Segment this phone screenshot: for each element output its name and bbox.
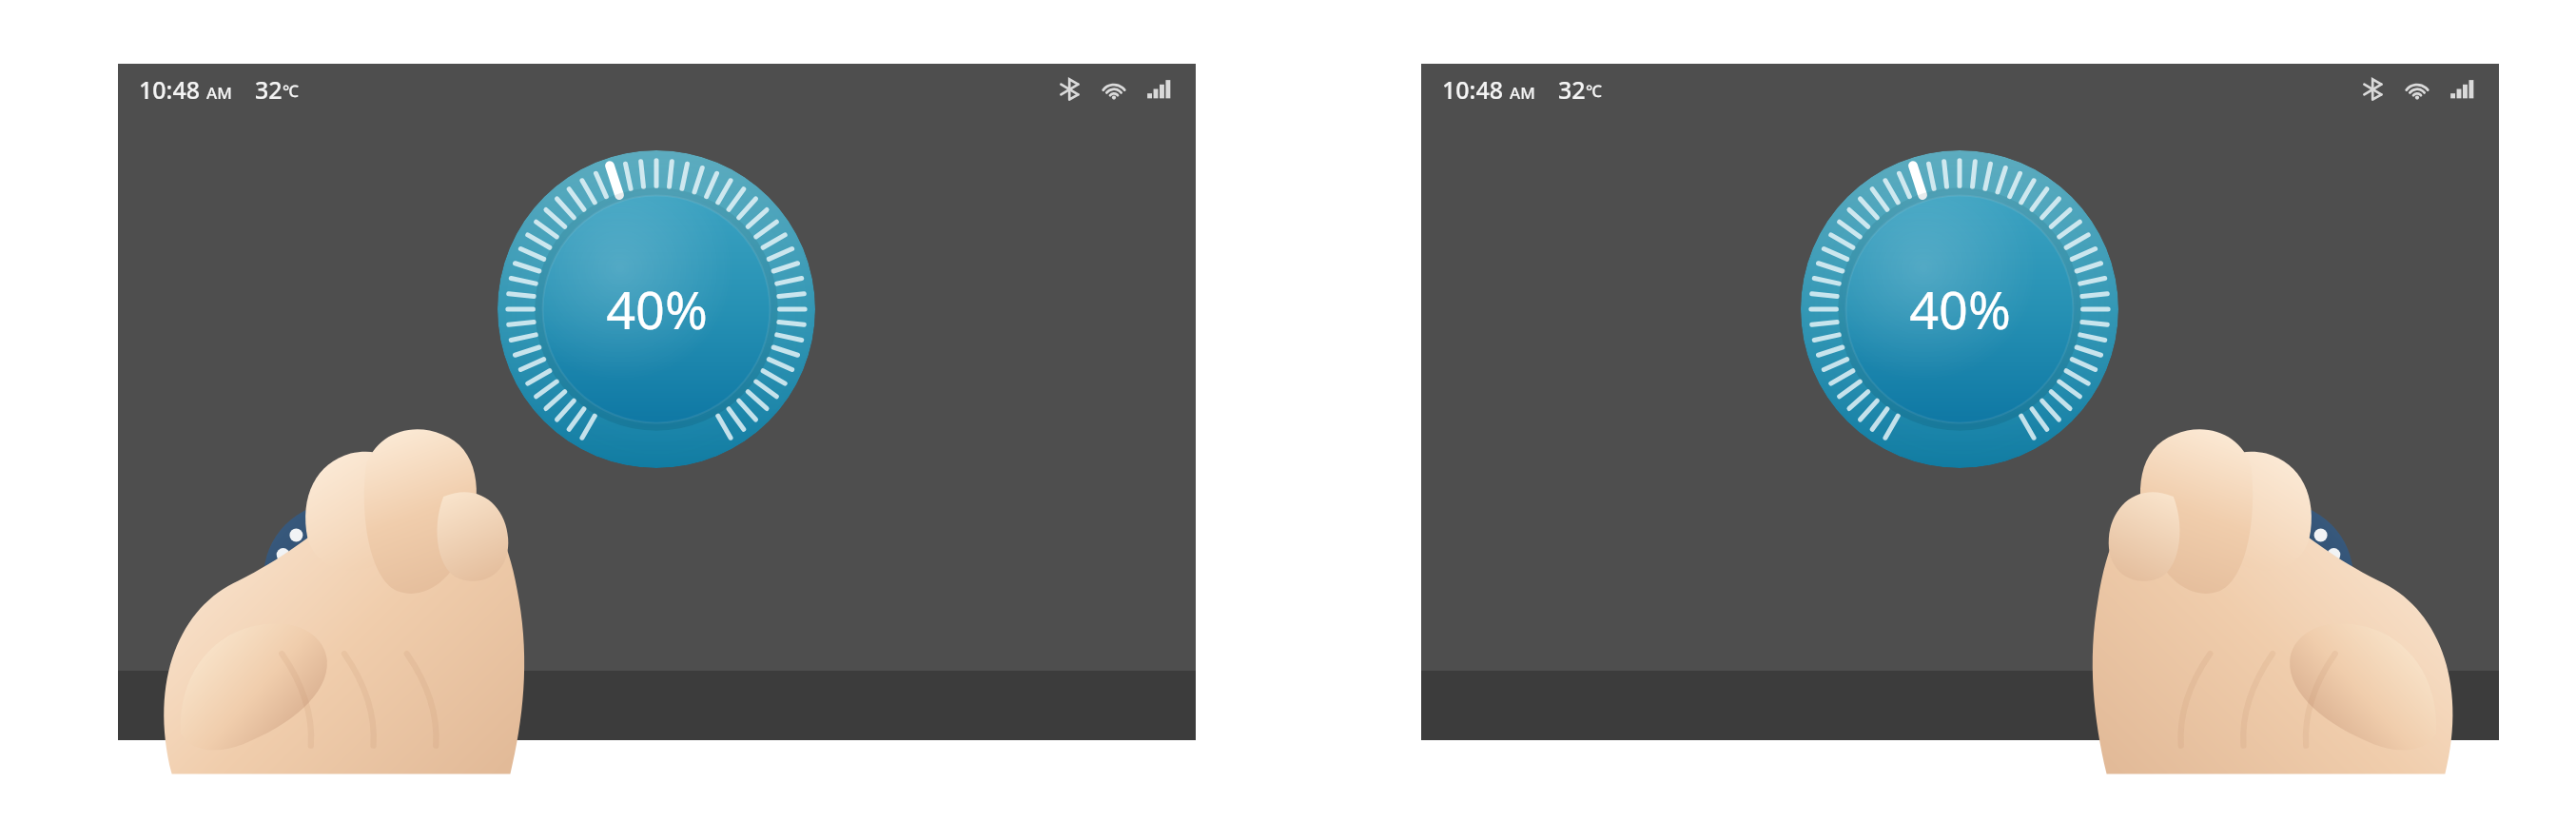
staticText: 40% — [606, 274, 708, 344]
staticText: ℃ — [1586, 80, 1602, 102]
other: Bluetooth — [2364, 76, 2383, 103]
button[interactable]: Brightness dial 40 percent — [1801, 150, 2118, 468]
staticText: AM — [206, 82, 232, 104]
staticText: 10:48 — [139, 73, 201, 106]
other: Mobile signal — [1146, 77, 1173, 102]
other: Wi-Fi — [1101, 77, 1127, 102]
button[interactable]: Brightness dial 40 percent — [498, 150, 815, 468]
other: Mobile signal — [2449, 77, 2476, 102]
staticText: AM — [1510, 82, 1535, 104]
other: Bluetooth — [1061, 76, 1080, 103]
staticText: 40% — [1909, 274, 2011, 344]
staticText: 32 — [1558, 73, 1586, 106]
staticText: 32 — [255, 73, 283, 106]
staticText: ℃ — [283, 80, 299, 102]
other: Wi-Fi — [2404, 77, 2430, 102]
staticText: 10:48 — [1442, 73, 1504, 106]
